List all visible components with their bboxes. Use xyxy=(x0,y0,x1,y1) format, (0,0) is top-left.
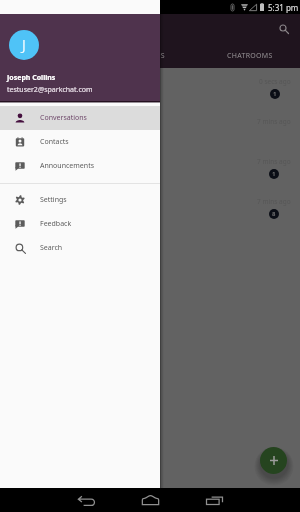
button[interactable]: Back xyxy=(70,488,102,512)
button[interactable]: 7 mins ago xyxy=(0,188,300,228)
button[interactable]: Recent apps xyxy=(198,488,230,512)
staticText: J xyxy=(22,35,26,55)
button[interactable]: PEOPLE xyxy=(0,44,100,68)
staticText: 5:31 pm xyxy=(268,2,299,13)
button[interactable]: CHATROOMS xyxy=(200,44,300,68)
staticText: 1 xyxy=(272,170,276,178)
staticText: PEOPLE xyxy=(36,51,64,61)
button[interactable]: Conversations xyxy=(0,106,160,130)
button[interactable]: Settings xyxy=(0,188,160,212)
button[interactable]: Search xyxy=(273,18,294,39)
staticText: CHATROOMS xyxy=(227,51,273,61)
button[interactable]: Search xyxy=(0,236,160,260)
staticText: Contacts xyxy=(40,137,69,147)
button[interactable]: Announcements xyxy=(0,154,160,178)
staticText: Joseph Collins xyxy=(7,73,56,83)
staticText: Search xyxy=(40,243,63,253)
button[interactable]: GROUPS xyxy=(100,44,200,68)
staticText: GROUPS xyxy=(135,51,165,61)
staticText: 1 xyxy=(273,90,277,98)
button[interactable]: Home xyxy=(134,488,166,512)
button[interactable]: 0 secs ago xyxy=(0,68,300,108)
button[interactable]: 7 mins ago xyxy=(0,108,300,148)
staticText: testuser2@sparkchat.com xyxy=(7,85,93,95)
staticText: Conversations xyxy=(40,113,87,123)
staticText: Feedback xyxy=(40,219,72,229)
staticText: Announcements xyxy=(40,161,95,171)
button[interactable]: New conversation xyxy=(260,447,287,474)
button[interactable]: Contacts xyxy=(0,130,160,154)
staticText: 8 xyxy=(272,210,276,218)
button[interactable]: 7 mins ago xyxy=(0,148,300,188)
button[interactable]: Feedback xyxy=(0,212,160,236)
staticText: Settings xyxy=(40,195,67,205)
